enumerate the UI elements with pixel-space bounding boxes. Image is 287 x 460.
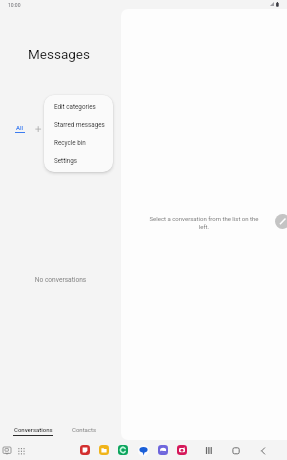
staticText: Recycle bin bbox=[54, 139, 86, 146]
button[interactable]: Recycle bin bbox=[44, 134, 113, 152]
button[interactable]: Compose message bbox=[275, 214, 287, 229]
button[interactable]: Samsung Internet bbox=[158, 445, 168, 455]
staticText: All bbox=[16, 124, 24, 131]
staticText: Select a conversation from the list on t… bbox=[145, 215, 263, 230]
button[interactable]: Messages bbox=[138, 445, 149, 456]
staticText: No conversations bbox=[0, 276, 121, 284]
staticText: 10:00 bbox=[8, 2, 21, 8]
staticText: Messages bbox=[28, 46, 90, 62]
staticText: Conversations bbox=[14, 426, 53, 433]
button[interactable]: Back bbox=[258, 444, 272, 458]
button[interactable]: Recent apps bbox=[204, 444, 218, 458]
button[interactable]: DeX mode bbox=[2, 446, 12, 456]
staticText: Starred messages bbox=[54, 121, 105, 128]
staticText: Contacts bbox=[72, 426, 97, 433]
button[interactable]: My Files bbox=[99, 445, 109, 455]
button[interactable]: All bbox=[15, 124, 25, 133]
button[interactable]: Edit categories bbox=[44, 98, 113, 116]
button[interactable]: Camera bbox=[177, 445, 187, 455]
button[interactable]: Starred messages bbox=[44, 116, 113, 134]
staticText: Settings bbox=[54, 157, 77, 164]
staticText: Edit categories bbox=[54, 103, 96, 110]
button[interactable]: Add category bbox=[32, 123, 44, 135]
button[interactable]: Contacts bbox=[72, 426, 97, 433]
button[interactable]: Phone bbox=[118, 445, 128, 455]
button[interactable]: Conversations bbox=[13, 426, 53, 436]
button[interactable]: Samsung Notes bbox=[80, 445, 90, 455]
button[interactable]: All apps bbox=[17, 446, 27, 456]
button[interactable]: Settings bbox=[44, 152, 113, 170]
button[interactable]: Home bbox=[231, 444, 245, 458]
